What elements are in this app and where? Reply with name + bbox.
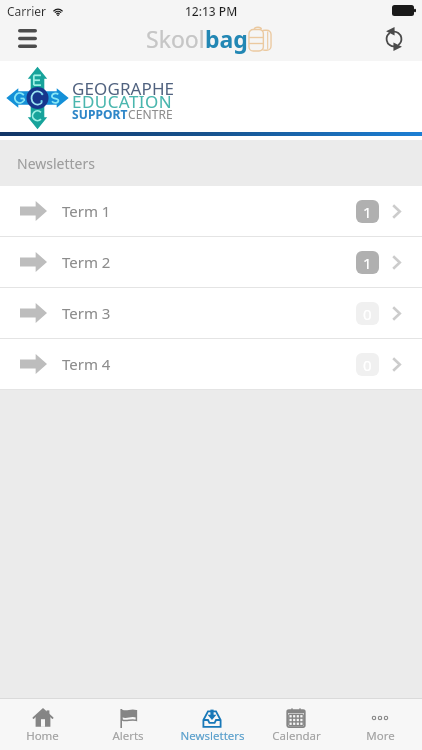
button[interactable]: Term 1 — [0, 186, 422, 237]
button[interactable]: Menu — [0, 21, 44, 61]
staticText: Term 3 — [62, 303, 111, 323]
staticText: 1 — [363, 253, 372, 273]
staticText: 12:13 PM — [185, 3, 238, 19]
staticText: More — [366, 728, 395, 744]
button[interactable]: Newsletters — [170, 699, 254, 750]
staticText: EDUCATION — [72, 90, 173, 113]
staticText: Term 2 — [62, 252, 111, 272]
staticText: 0 — [363, 355, 372, 375]
staticText: CENTRE — [128, 106, 173, 122]
staticText: Skool — [146, 23, 205, 54]
button[interactable]: Calendar — [254, 699, 338, 750]
staticText: Calendar — [272, 728, 321, 744]
staticText: GEOGRAPHE — [72, 77, 175, 100]
staticText: Term 1 — [62, 201, 111, 221]
staticText: SUPPORT — [72, 106, 128, 122]
staticText: 1 — [363, 202, 372, 222]
button[interactable]: Alerts — [85, 699, 170, 750]
staticText: 0 — [363, 304, 372, 324]
button[interactable]: Term 2 — [0, 237, 422, 288]
button[interactable]: Home — [0, 699, 85, 750]
button[interactable]: Term 4 — [0, 339, 422, 390]
staticText: bag — [205, 23, 248, 54]
button[interactable]: More — [338, 699, 422, 750]
staticText: Alerts — [112, 728, 144, 744]
staticText: Term 4 — [62, 354, 111, 374]
staticText: Carrier — [7, 3, 47, 19]
staticText: Newsletters — [180, 728, 245, 744]
staticText: Home — [26, 728, 59, 744]
button[interactable]: Term 3 — [0, 288, 422, 339]
button[interactable]: Refresh — [376, 21, 422, 61]
staticText: Newsletters — [17, 154, 95, 173]
